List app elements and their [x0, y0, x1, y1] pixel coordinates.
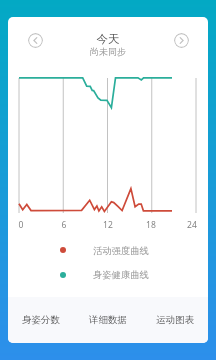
button[interactable]: 详细数据: [74, 297, 141, 343]
staticText: 24: [132, 219, 208, 231]
staticText: 18: [91, 219, 208, 231]
staticText: 12: [48, 219, 168, 231]
staticText: 身姿分数: [22, 314, 60, 326]
button[interactable]: Next day: [174, 33, 189, 48]
staticText: 今天: [48, 32, 168, 46]
staticText: 详细数据: [89, 314, 127, 326]
staticText: 6: [8, 219, 124, 231]
staticText: 身姿健康曲线: [93, 269, 149, 281]
staticText: 尚未同步: [48, 46, 168, 57]
button[interactable]: 运动图表: [141, 297, 208, 343]
button[interactable]: Previous day: [28, 33, 43, 48]
staticText: 运动图表: [156, 314, 194, 326]
button[interactable]: 身姿分数: [8, 297, 74, 343]
staticText: 0: [8, 219, 81, 231]
staticText: 活动强度曲线: [93, 245, 149, 257]
